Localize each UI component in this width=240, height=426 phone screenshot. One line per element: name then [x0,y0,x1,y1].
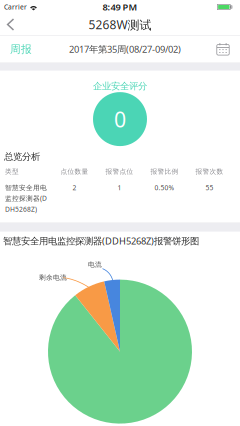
staticText: 5268W测试 [88,16,151,32]
staticText: 报警次数 [195,167,223,176]
staticText: 电流 [88,260,102,269]
staticText: 监控探测器(D [5,194,47,203]
button[interactable]: 周报 [2,36,40,63]
staticText: 类型 [5,167,19,176]
staticText: 2 [72,183,76,192]
staticText: 剩余电流 [39,273,67,282]
button[interactable]: Back [0,14,22,35]
staticText: 企业安全评分 [93,80,147,92]
staticText: 1 [117,183,121,192]
staticText: 2017年第35周(08/27-09/02) [69,43,181,55]
staticText: 报警点位 [105,167,133,176]
staticText: DH5268Z) [5,205,37,213]
staticText: Carrier [4,3,27,11]
staticText: 0 [114,105,126,133]
staticText: 周报 [10,42,32,56]
staticText: 智慧安全用电监控探测器(DDH5268Z)报警饼形图 [3,235,199,247]
staticText: 报警比例 [150,167,178,176]
staticText: 总览分析 [4,151,40,162]
button[interactable]: Pick date [210,36,236,63]
staticText: 智慧安全用电 [5,184,47,192]
staticText: 8:49 PM [102,1,137,13]
staticText: 55 [205,183,213,192]
staticText: 点位数量 [60,167,88,176]
staticText: 0.50% [154,183,174,192]
